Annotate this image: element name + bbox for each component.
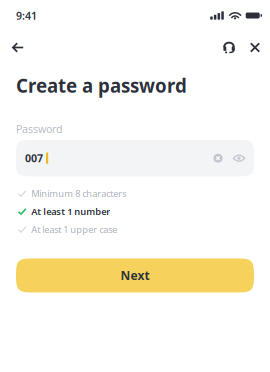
staticText: 9:41 (16, 8, 37, 23)
button[interactable]: Back (12, 34, 38, 60)
button[interactable]: Close (245, 34, 265, 60)
staticText: At least 1 number (31, 205, 110, 218)
button[interactable]: Support (216, 34, 242, 60)
button[interactable]: Show password (231, 147, 247, 169)
button[interactable]: Clear password (210, 147, 226, 169)
staticText: 007 (25, 151, 43, 165)
staticText: Minimum 8 characters (31, 187, 126, 200)
staticText: At least 1 upper case (31, 223, 117, 236)
staticText: Create a password (16, 73, 187, 98)
staticText: Next (120, 267, 149, 283)
button[interactable]: Next (16, 258, 254, 292)
staticText: Password (16, 122, 63, 136)
